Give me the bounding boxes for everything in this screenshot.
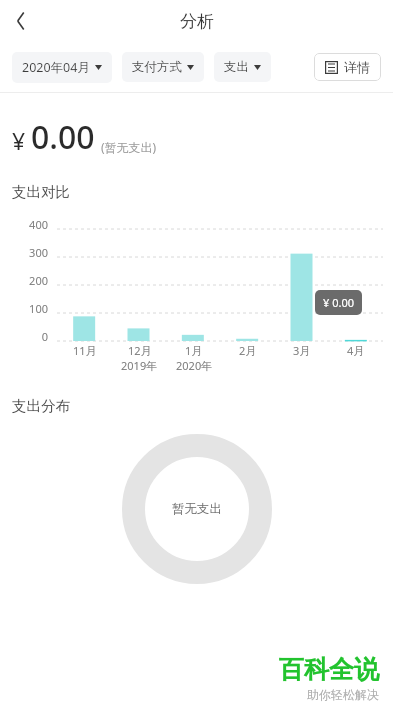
button[interactable]: 支付方式 [122,52,204,82]
staticText: 0 [0,329,48,343]
staticText: 支出分布 [12,397,70,415]
staticText: 2019年 [121,358,158,373]
button[interactable]: 支出 [214,52,271,82]
staticText: 百科全说 [279,654,379,685]
staticText: 支付方式 [132,59,182,75]
staticText: 支出 [224,59,249,75]
staticText: 100 [0,301,48,316]
staticText: ¥ 0.00 [323,295,354,310]
staticText: 3月 [293,343,311,358]
staticText: 分析 [180,11,214,32]
staticText: 支出对比 [12,183,70,201]
button[interactable]: 2020年04月 [12,52,112,83]
staticText: 400 [0,217,48,232]
staticText: 2020年04月 [22,59,90,76]
staticText: 4月 [347,343,365,358]
staticText: 详情 [344,59,370,75]
staticText: 11月 [73,343,97,358]
staticText: 200 [0,273,48,288]
button[interactable]: Back [0,0,42,42]
staticText: 300 [0,245,48,260]
staticText: ¥ [12,125,26,156]
staticText: 2020年 [176,358,213,373]
staticText: 助你轻松解决 [307,687,379,702]
staticText: 2月 [239,343,257,358]
button[interactable]: ¥ 0.00 [315,290,362,315]
staticText: (暂无支出) [101,139,157,155]
staticText: 12月 [128,343,152,358]
staticText: 暂无支出 [172,501,222,517]
button[interactable]: 详情 [314,53,381,81]
staticText: 0.00 [31,115,95,159]
staticText: 1月 [185,343,203,358]
